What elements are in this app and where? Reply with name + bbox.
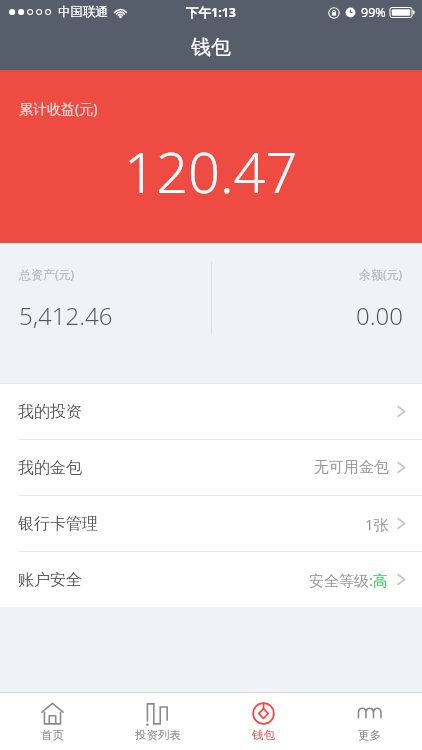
staticText: 更多 [358, 728, 381, 742]
staticText: 中国联通 [58, 4, 108, 20]
staticText: 5,412.46 [19, 299, 113, 332]
staticText: 我的投资 [18, 402, 82, 422]
staticText: 钱包 [252, 728, 275, 742]
staticText: 账户安全 [18, 570, 82, 590]
button[interactable]: 银行卡管理 [0, 496, 422, 551]
staticText: 我的金包 [18, 458, 82, 478]
button[interactable]: 钱包 [210, 693, 316, 750]
staticText: 钱包 [191, 35, 231, 60]
button[interactable]: 投资列表 [105, 693, 210, 750]
button[interactable]: 我的金包 [0, 440, 422, 495]
staticText: 累计收益(元) [19, 99, 98, 118]
staticText: 1张 [365, 514, 389, 534]
staticText: 投资列表 [135, 728, 181, 742]
staticText: 总资产(元) [19, 266, 75, 282]
staticText: 99% [361, 4, 386, 21]
staticText: 安全等级:高 [309, 570, 389, 590]
staticText: 银行卡管理 [18, 514, 98, 534]
staticText: 无可用金包 [314, 458, 389, 477]
staticText: 0.00 [356, 299, 403, 332]
staticText: 120.47 [124, 133, 298, 209]
button[interactable]: 更多 [316, 693, 422, 750]
staticText: 下午1:13 [186, 4, 236, 21]
button[interactable]: 我的投资 [0, 384, 422, 439]
button[interactable]: 首页 [0, 693, 105, 750]
staticText: 首页 [41, 728, 64, 742]
staticText: 余额(元) [359, 266, 403, 282]
button[interactable]: 账户安全 [0, 552, 422, 607]
